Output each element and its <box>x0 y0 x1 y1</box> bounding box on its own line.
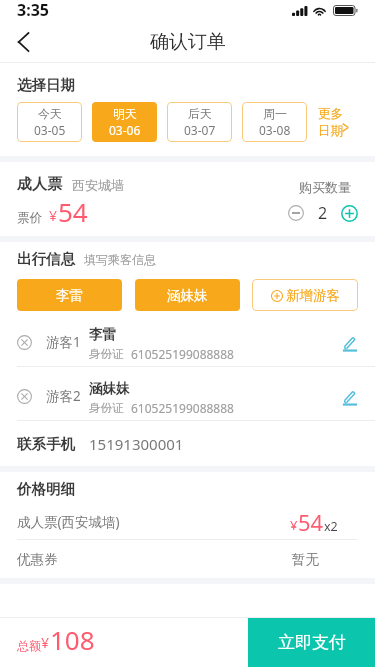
staticText: 价格明细 <box>17 480 75 498</box>
staticText: 610525199088888 <box>131 400 234 416</box>
button[interactable]: Edit 游客1 <box>338 332 360 354</box>
staticText: 108 <box>50 622 95 657</box>
staticText: 确认订单 <box>150 30 226 54</box>
staticText: 新增游客 <box>286 287 340 304</box>
staticText: 总额 <box>17 638 41 653</box>
staticText: 选择日期 <box>17 76 75 94</box>
staticText: ¥ <box>290 516 298 534</box>
button[interactable]: 李雷 <box>17 279 122 311</box>
button[interactable]: 联系手机 <box>0 421 375 466</box>
staticText: 立即支付 <box>278 632 346 653</box>
button[interactable]: 游客2 <box>0 367 375 420</box>
button[interactable]: 立即支付 <box>248 618 375 667</box>
staticText: 李雷 <box>56 287 83 304</box>
staticText: 周一 <box>263 106 287 121</box>
staticText: 暂无 <box>292 551 319 568</box>
staticText: 610525199088888 <box>131 346 234 362</box>
staticText: 联系手机 <box>17 435 75 453</box>
staticText: 填写乘客信息 <box>84 252 156 267</box>
button[interactable]: Back <box>0 22 46 62</box>
staticText: 日期 <box>318 123 343 139</box>
button[interactable]: 游客1 <box>0 313 375 366</box>
staticText: 票价 <box>17 210 42 226</box>
staticText: 明天 <box>113 106 137 121</box>
staticText: 今天 <box>38 106 62 121</box>
button[interactable]: 新增游客 <box>252 279 358 311</box>
staticText: 03-06 <box>109 122 141 138</box>
staticText: 更多 <box>318 106 343 122</box>
staticText: 购买数量 <box>299 179 351 195</box>
staticText: 3:35 <box>17 0 49 21</box>
button[interactable]: Edit 游客2 <box>338 386 360 408</box>
staticText: 03-07 <box>184 122 216 138</box>
staticText: x2 <box>324 518 338 535</box>
staticText: 身份证 <box>89 347 124 361</box>
staticText: ¥ <box>49 206 58 225</box>
staticText: ¥ <box>41 633 50 652</box>
button[interactable]: 周一 <box>242 102 307 142</box>
staticText: 15191300001 <box>89 434 184 454</box>
staticText: 游客2 <box>46 387 81 405</box>
staticText: 54 <box>298 507 324 537</box>
staticText: 优惠券 <box>17 551 58 568</box>
button[interactable]: Increase quantity <box>339 203 359 223</box>
staticText: 03-05 <box>34 122 66 138</box>
staticText: 涵妹妹 <box>89 380 130 397</box>
staticText: 成人票 <box>17 175 62 194</box>
staticText: 身份证 <box>89 401 124 415</box>
staticText: 李雷 <box>89 326 116 343</box>
staticText: 54 <box>58 194 88 229</box>
button[interactable]: 更多 <box>318 106 350 139</box>
staticText: 03-08 <box>259 122 291 138</box>
staticText: 2 <box>318 202 328 224</box>
staticText: 出行信息 <box>17 250 75 268</box>
staticText: 后天 <box>188 106 212 121</box>
staticText: 西安城墙 <box>72 177 124 193</box>
button[interactable]: 后天 <box>167 102 232 142</box>
button[interactable]: Decrease quantity <box>286 203 306 223</box>
button[interactable]: 今天 <box>17 102 82 142</box>
staticText: 成人票(西安城墙) <box>17 513 120 531</box>
staticText: 游客1 <box>46 333 81 351</box>
button[interactable]: 涵妹妹 <box>135 279 240 311</box>
button[interactable]: 明天 <box>92 102 157 142</box>
staticText: 涵妹妹 <box>167 287 208 304</box>
